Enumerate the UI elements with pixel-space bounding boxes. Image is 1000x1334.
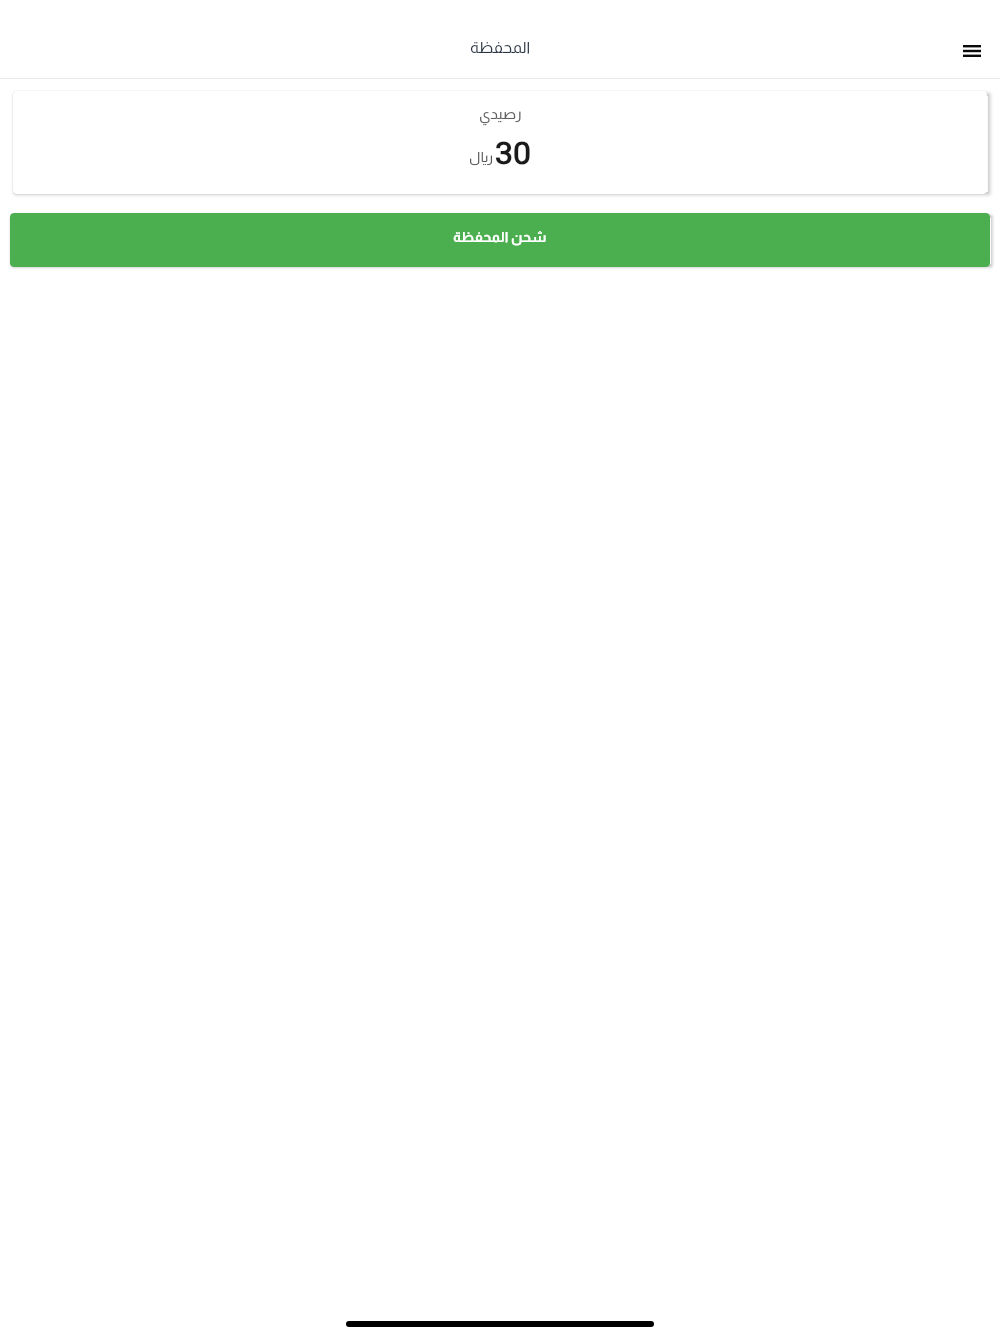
staticText: المحفظة [470,39,531,57]
staticText: رصيدي [479,105,522,122]
staticText: ريال [469,149,494,165]
staticText: شحن المحفظة [453,229,547,245]
button[interactable]: شحن المحفظة [10,213,990,267]
button[interactable]: Menu [943,31,989,73]
staticText: 30 [495,134,531,172]
